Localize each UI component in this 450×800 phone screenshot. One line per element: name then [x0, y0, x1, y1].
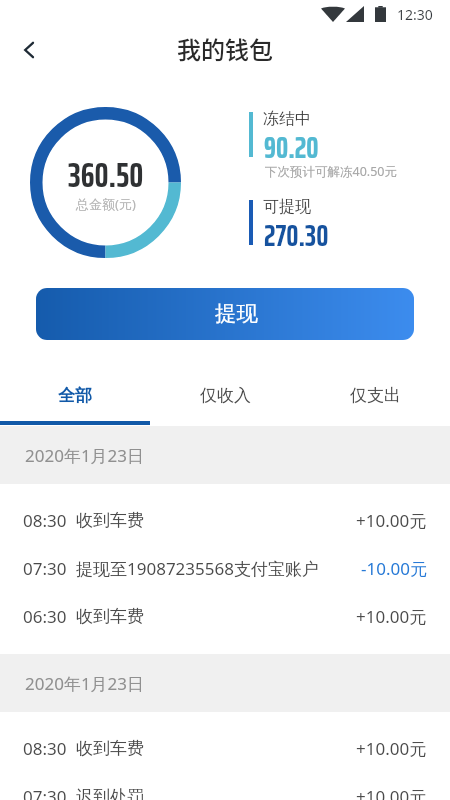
button[interactable]: 07:30 — [0, 544, 450, 592]
staticText: -10.00元 — [361, 557, 427, 580]
staticText: 全部 — [58, 385, 92, 406]
staticText: 仅收入 — [200, 385, 251, 406]
staticText: 06:30 — [23, 605, 67, 628]
staticText: 迟到处罚 — [76, 786, 144, 800]
staticText: 2020年1月23日 — [25, 672, 145, 695]
staticText: 07:30 — [23, 785, 67, 800]
staticText: 可提现 — [263, 197, 311, 217]
button[interactable]: 仅收入 — [150, 370, 300, 426]
staticText: 下次预计可解冻40.50元 — [265, 163, 397, 180]
button[interactable]: 提现 — [36, 288, 414, 340]
staticText: 08:30 — [23, 509, 67, 532]
staticText: +10.00元 — [356, 737, 427, 760]
staticText: 90.20 — [264, 123, 319, 171]
button[interactable]: 仅支出 — [300, 370, 450, 426]
button[interactable]: Back — [5, 26, 53, 74]
staticText: 我的钱包 — [177, 31, 273, 66]
staticText: 360.50 — [68, 147, 144, 202]
staticText: 提现至19087235568支付宝账户 — [76, 557, 319, 580]
staticText: 07:30 — [23, 557, 67, 580]
staticText: 仅支出 — [350, 385, 401, 406]
staticText: 提现 — [215, 300, 258, 327]
button[interactable]: 全部 — [0, 370, 150, 426]
button[interactable]: 08:30 — [0, 724, 450, 772]
staticText: 270.30 — [264, 211, 329, 259]
staticText: +10.00元 — [356, 785, 427, 800]
staticText: 收到车费 — [76, 510, 144, 531]
staticText: 收到车费 — [76, 606, 144, 627]
button[interactable]: 06:30 — [0, 592, 450, 640]
staticText: 总金额(元) — [76, 195, 136, 213]
staticText: +10.00元 — [356, 605, 427, 628]
staticText: 2020年1月23日 — [25, 444, 145, 467]
button[interactable]: 08:30 — [0, 496, 450, 544]
staticText: +10.00元 — [356, 509, 427, 532]
staticText: 12:30 — [397, 5, 433, 24]
staticText: 08:30 — [23, 737, 67, 760]
button[interactable]: 07:30 — [0, 772, 450, 800]
staticText: 冻结中 — [263, 109, 311, 129]
staticText: 收到车费 — [76, 738, 144, 759]
